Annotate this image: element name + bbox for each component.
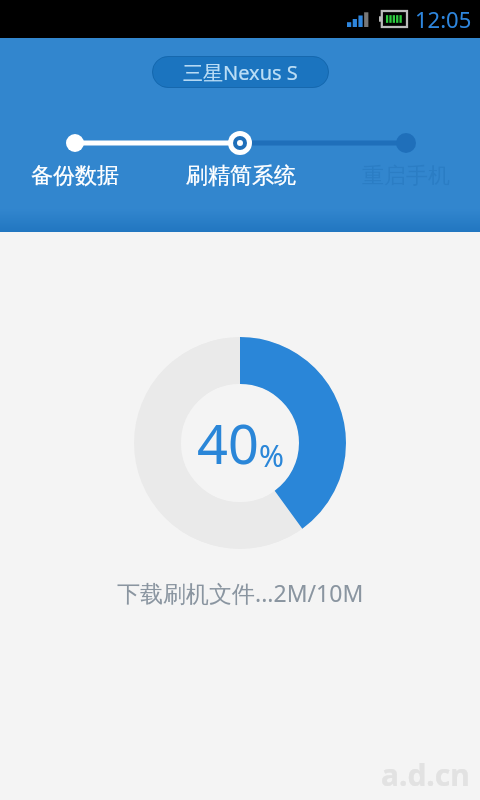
- staticText: 40: [197, 406, 259, 480]
- staticText: a.d.cn: [381, 754, 470, 795]
- staticText: 下载刷机文件...2M/10M: [117, 577, 364, 608]
- staticText: 备份数据: [31, 162, 119, 190]
- staticText: %: [259, 435, 284, 476]
- button[interactable]: 重启手机: [361, 162, 451, 190]
- staticText: 12:05: [415, 4, 472, 34]
- staticText: 重启手机: [362, 162, 450, 190]
- staticText: 三星Nexus S: [183, 59, 298, 86]
- button[interactable]: 三星Nexus S: [152, 56, 329, 88]
- button[interactable]: 刷精简系统: [184, 162, 297, 190]
- button[interactable]: 备份数据: [30, 162, 120, 190]
- staticText: 刷精简系统: [186, 162, 296, 190]
